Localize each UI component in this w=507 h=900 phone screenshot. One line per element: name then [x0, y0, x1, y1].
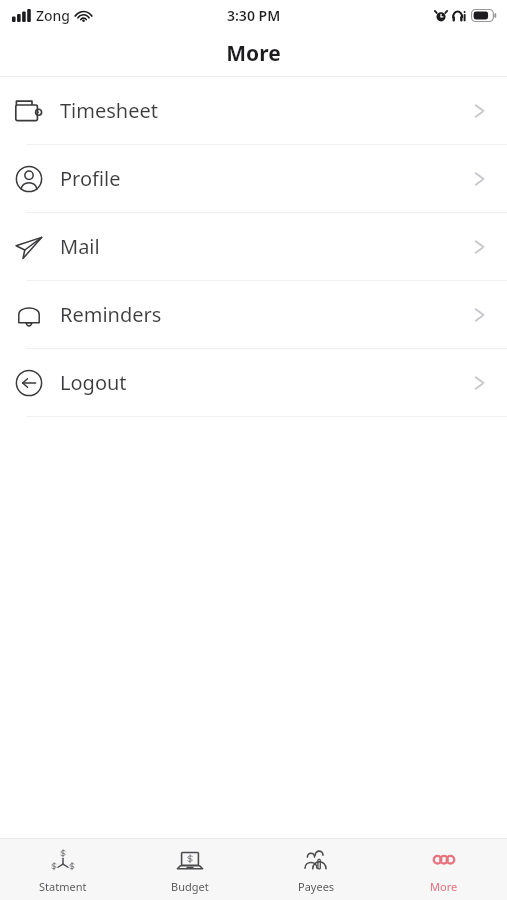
staticText: 3:30 PM	[227, 6, 281, 25]
staticText: More	[430, 879, 458, 894]
button[interactable]: Statment	[0, 839, 126, 900]
staticText: Logout	[60, 369, 127, 396]
button[interactable]: Payees	[253, 839, 380, 900]
button[interactable]: Timesheet	[0, 77, 507, 144]
staticText: Budget	[171, 879, 209, 894]
button[interactable]: Reminders	[0, 281, 507, 348]
staticText: Mail	[60, 233, 100, 260]
staticText: Reminders	[60, 301, 162, 328]
staticText: Profile	[60, 165, 121, 192]
staticText: Zong	[36, 6, 71, 25]
staticText: Payees	[298, 879, 335, 894]
button[interactable]: More	[380, 839, 507, 900]
staticText: Timesheet	[60, 97, 158, 124]
button[interactable]: Logout	[0, 349, 507, 416]
staticText: More	[226, 39, 281, 68]
staticText: Statment	[39, 879, 87, 894]
button[interactable]: Mail	[0, 213, 507, 280]
button[interactable]: Budget	[126, 839, 253, 900]
button[interactable]: Profile	[0, 145, 507, 212]
